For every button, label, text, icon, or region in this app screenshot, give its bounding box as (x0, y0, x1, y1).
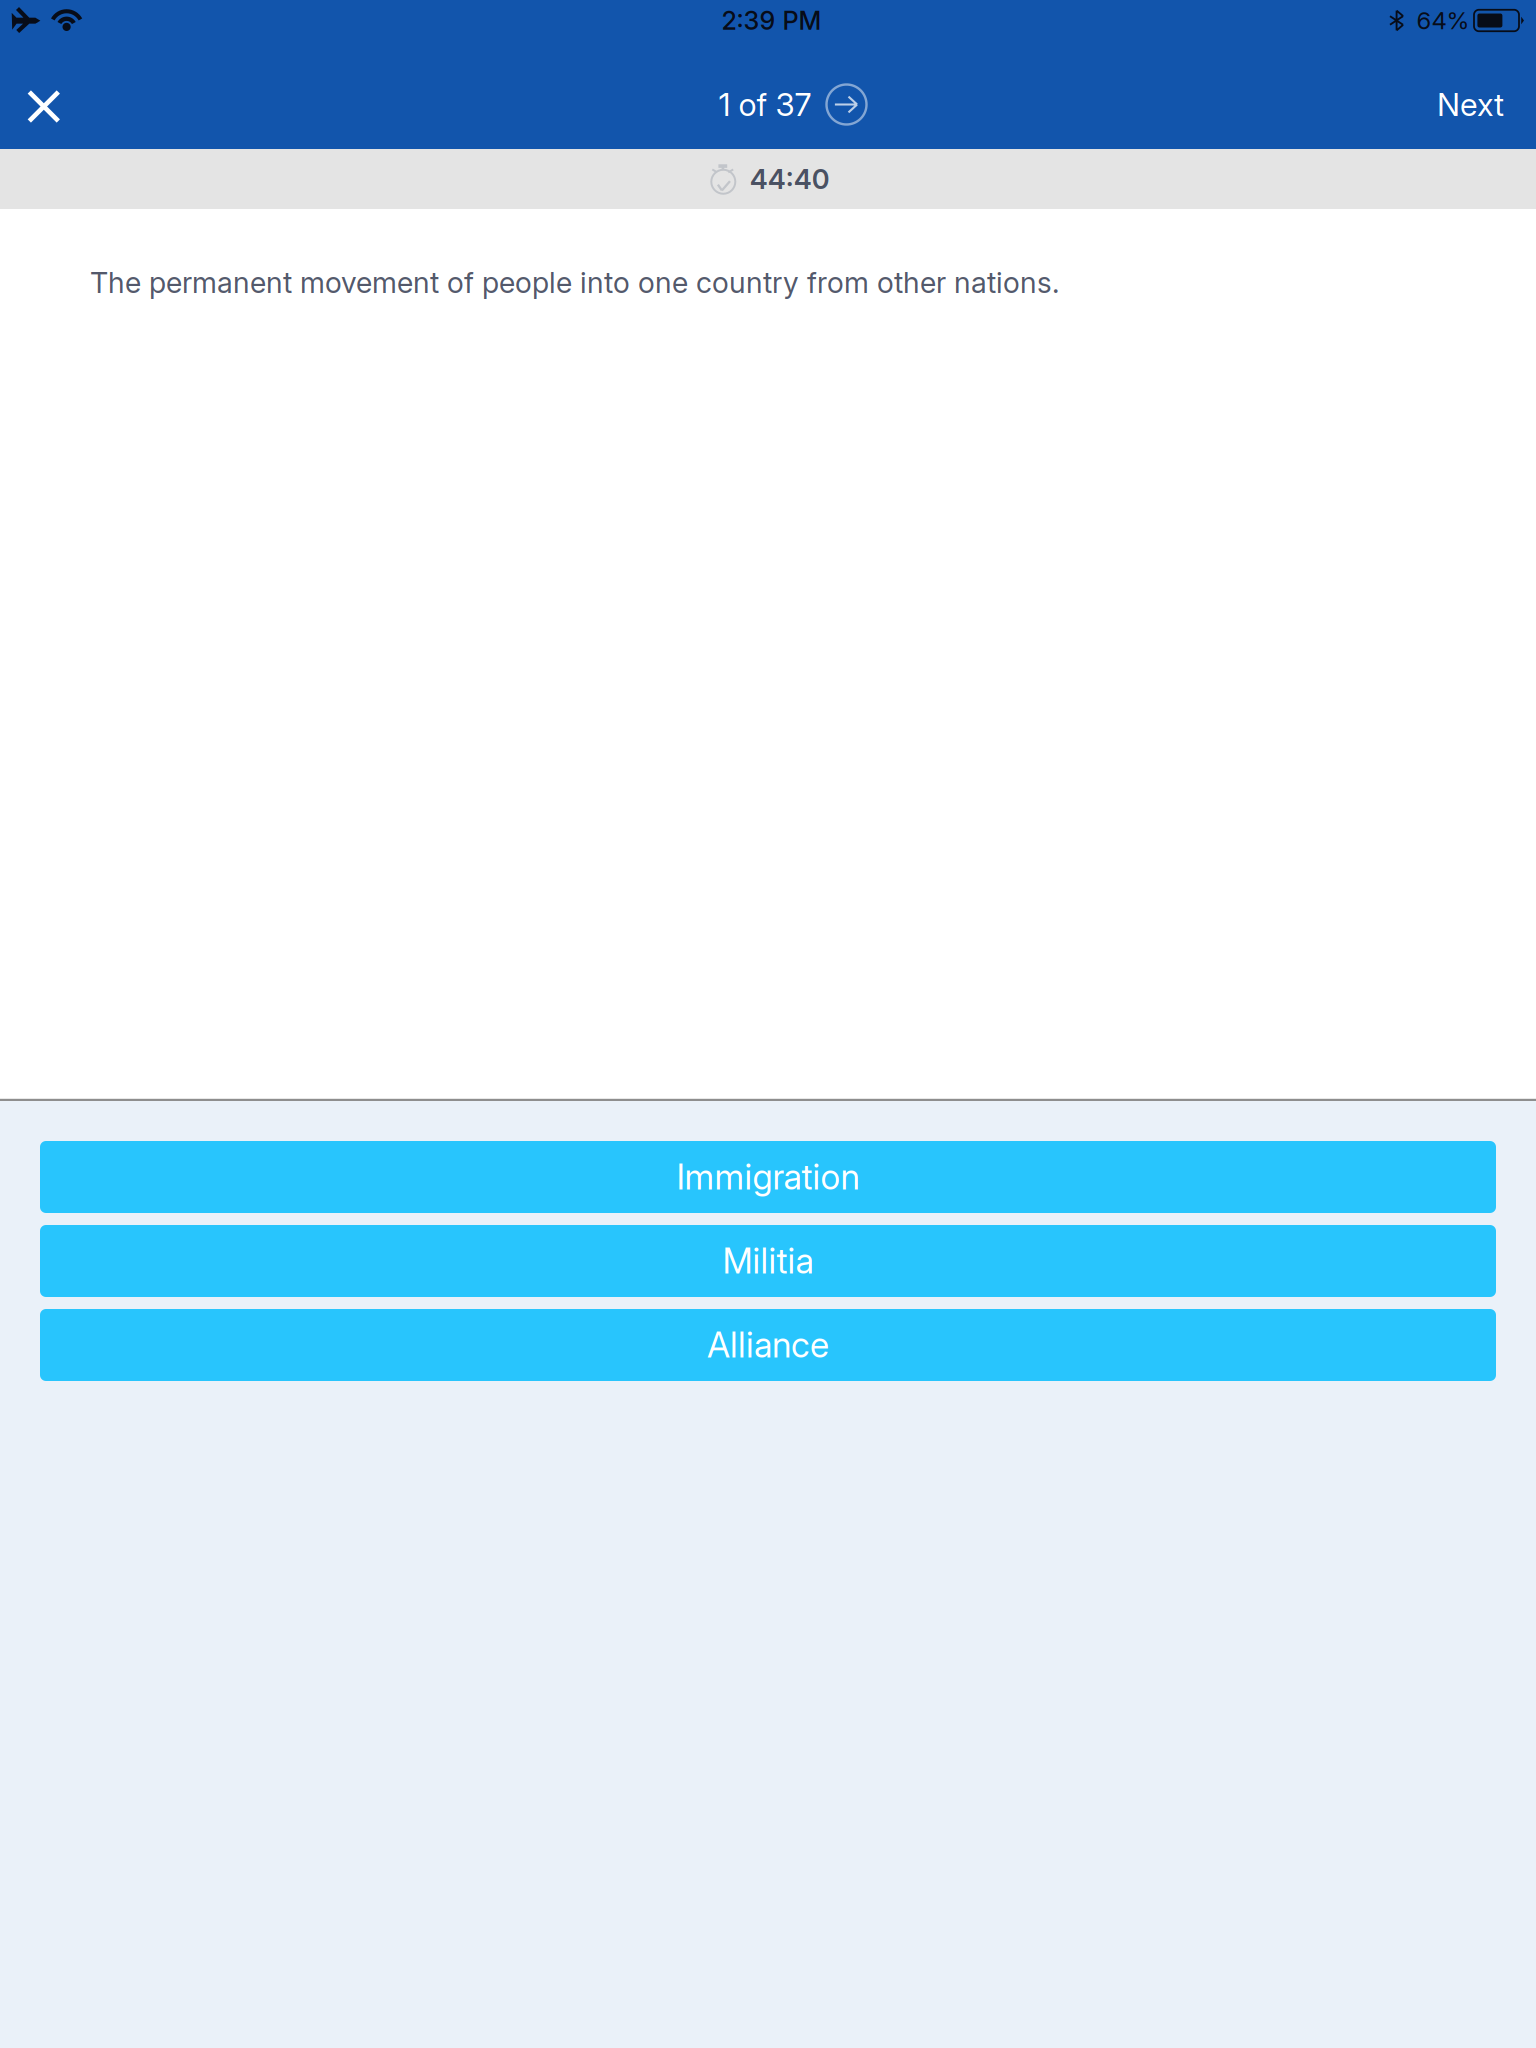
button[interactable]: Alliance (40, 1309, 1496, 1381)
button[interactable]: 1 of 37 (721, 55, 814, 154)
staticText: Militia (722, 1240, 813, 1282)
staticText: Immigration (676, 1156, 859, 1198)
staticText: Next (1437, 85, 1504, 124)
staticText: The permanent movement of people into on… (90, 265, 1059, 300)
button[interactable]: Militia (40, 1225, 1496, 1297)
button[interactable]: Close (0, 55, 91, 154)
staticText: 1 of 37 (718, 85, 811, 124)
staticText: 2:39 PM (721, 5, 821, 36)
staticText: Alliance (707, 1324, 829, 1366)
staticText: 64% (1416, 6, 1469, 35)
button[interactable]: Immigration (40, 1141, 1496, 1213)
button[interactable]: Next (1407, 55, 1536, 154)
staticText: 44:40 (750, 162, 830, 196)
